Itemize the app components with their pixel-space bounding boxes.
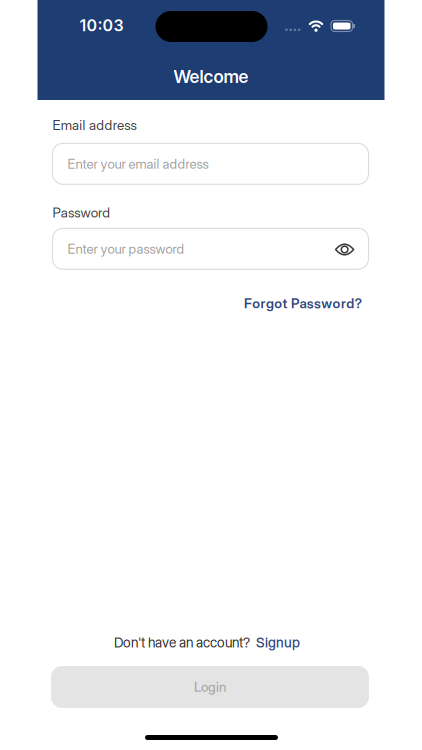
staticText: Don't have an account? xyxy=(114,634,250,651)
staticText: Forgot Password? xyxy=(244,295,362,312)
button[interactable]: Show password xyxy=(327,229,363,269)
button[interactable]: Forgot Password? xyxy=(244,295,362,312)
staticText: Signup xyxy=(256,634,300,651)
button[interactable]: Signup xyxy=(256,634,300,651)
textField[interactable]: Enter your email address xyxy=(67,156,356,172)
staticText: Email address xyxy=(52,117,136,133)
staticText: Login xyxy=(194,679,226,695)
staticText: Enter your email address xyxy=(67,156,208,172)
staticText: Enter your password xyxy=(67,241,184,257)
secureTextField[interactable]: Enter your password xyxy=(67,241,328,257)
staticText: Enter your email address xyxy=(67,156,208,172)
button[interactable]: Login xyxy=(51,666,369,708)
staticText: 10:03 xyxy=(79,16,123,35)
staticText: Welcome xyxy=(173,66,248,87)
staticText: Enter your password xyxy=(67,241,184,257)
staticText: Password xyxy=(52,204,110,221)
